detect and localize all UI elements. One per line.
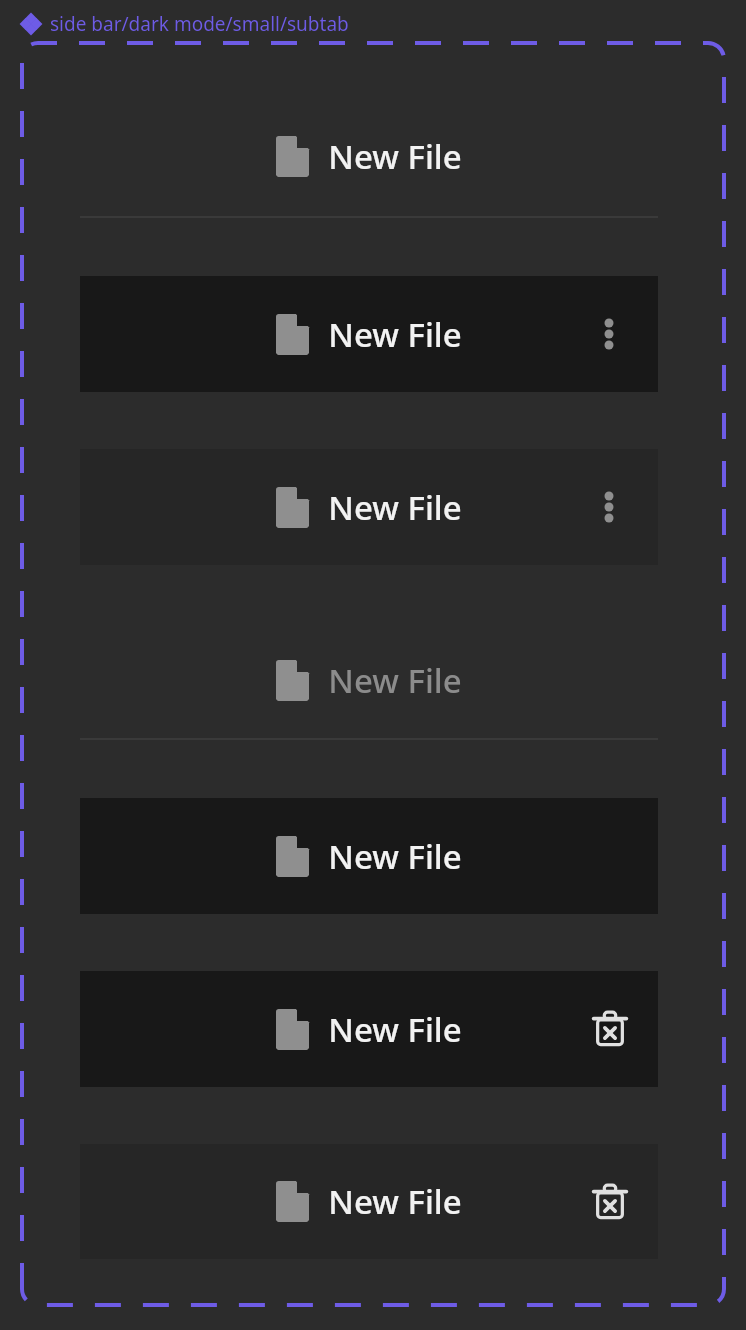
button[interactable]: New File <box>80 971 658 1087</box>
button[interactable]: New File <box>80 798 658 914</box>
button[interactable]: More options <box>589 314 629 354</box>
button[interactable]: New File <box>80 97 658 216</box>
button[interactable]: New File <box>80 449 658 565</box>
staticText: New File <box>328 834 462 879</box>
staticText: New File <box>328 485 462 530</box>
button[interactable]: New File <box>80 276 658 392</box>
staticText: New File <box>328 1179 462 1224</box>
staticText: New File <box>328 134 462 179</box>
button[interactable]: Delete <box>588 1180 632 1224</box>
button[interactable]: New File <box>80 1144 658 1259</box>
staticText: side bar/dark mode/small/subtab <box>50 11 349 37</box>
button[interactable]: More options <box>589 487 629 527</box>
staticText: New File <box>328 1007 462 1052</box>
staticText: New File <box>328 312 462 357</box>
button[interactable]: New File <box>80 622 658 738</box>
staticText: New File <box>328 658 462 703</box>
button[interactable]: Delete <box>588 1007 632 1051</box>
